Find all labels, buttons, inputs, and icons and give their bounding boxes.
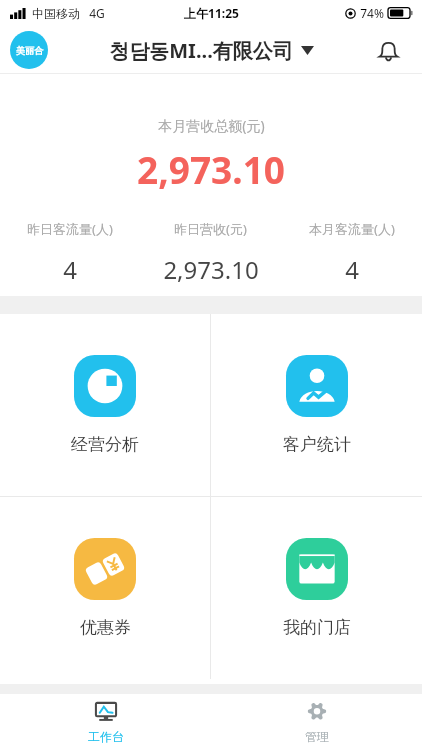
button[interactable]: 청담동MI...有限公司 [109, 37, 314, 64]
staticText: 我的门店 [283, 617, 351, 638]
button[interactable]: 工作台 [0, 694, 211, 750]
button[interactable]: 管理 [211, 694, 422, 750]
staticText: 昨日客流量(人) [27, 220, 113, 238]
button[interactable]: 本月客流量(人) [281, 202, 422, 296]
staticText: 2,973.10 [163, 253, 259, 286]
staticText: 4G [89, 5, 105, 21]
button[interactable]: 昨日客流量(人) [0, 202, 140, 296]
staticText: 中国移动 [32, 6, 80, 21]
button[interactable]: 优惠券 [0, 497, 210, 679]
button[interactable]: 客户统计 [211, 314, 422, 496]
staticText: 4 [345, 253, 359, 286]
staticText: 4 [63, 253, 77, 286]
staticText: 本月营收总额(元) [158, 116, 265, 135]
staticText: 上午11:25 [184, 5, 239, 21]
button[interactable]: 我的门店 [211, 497, 422, 679]
staticText: 客户统计 [283, 434, 351, 455]
staticText: 本月客流量(人) [309, 220, 395, 238]
staticText: 昨日营收(元) [174, 220, 247, 238]
staticText: 美丽合 [16, 45, 43, 56]
staticText: 2,973.10 [137, 144, 285, 194]
staticText: 청담동MI...有限公司 [109, 37, 293, 64]
button[interactable]: Notifications [368, 30, 408, 70]
staticText: 74% [360, 5, 384, 21]
staticText: 工作台 [88, 729, 124, 744]
button[interactable]: Company logo [10, 31, 48, 69]
staticText: 优惠券 [80, 617, 131, 638]
button[interactable]: 经营分析 [0, 314, 210, 496]
staticText: 管理 [305, 729, 329, 744]
staticText: 经营分析 [71, 434, 139, 455]
button[interactable]: 昨日营收(元) [140, 202, 281, 296]
